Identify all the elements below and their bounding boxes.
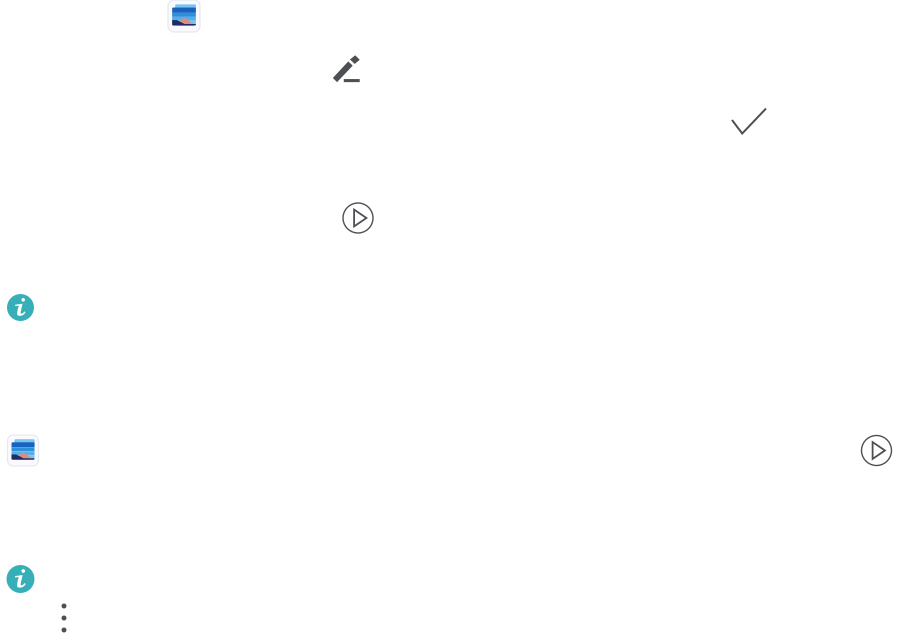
button[interactable]: Done [732, 108, 766, 133]
button[interactable]: Information [6, 565, 34, 593]
button[interactable]: Photos [168, 0, 200, 32]
button[interactable]: Play [343, 203, 373, 233]
button[interactable]: More options [61, 603, 66, 632]
button[interactable]: Information [7, 294, 34, 321]
button[interactable]: Play [861, 435, 891, 465]
button[interactable]: Photos [7, 435, 38, 466]
button[interactable]: Edit [332, 55, 360, 83]
